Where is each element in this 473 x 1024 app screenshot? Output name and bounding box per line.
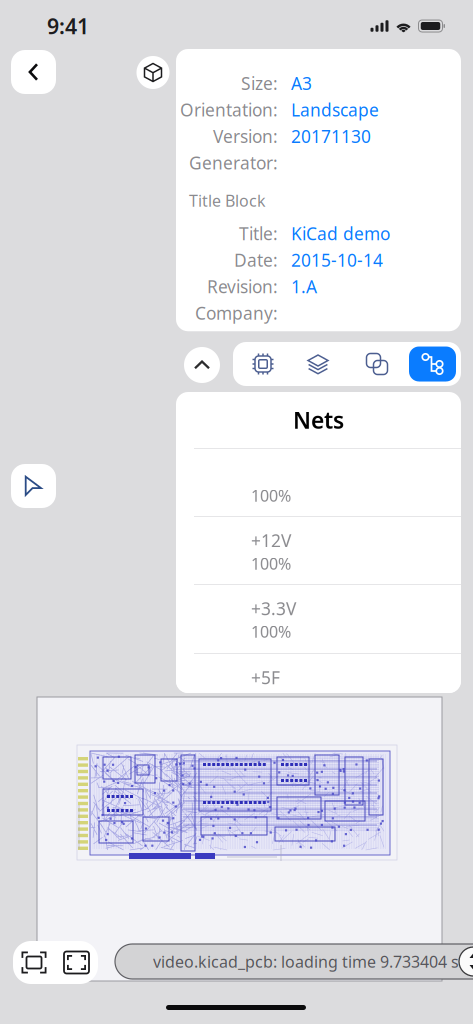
staticText: 100% — [251, 485, 291, 506]
button[interactable] — [176, 448, 461, 516]
button[interactable]: Footprints — [349, 342, 405, 386]
staticText: 100% — [251, 553, 291, 574]
staticText: Version: — [213, 125, 278, 148]
staticText: Date: — [234, 248, 278, 271]
staticText: Title: — [239, 222, 278, 245]
button[interactable]: Loading status — [115, 944, 473, 979]
button[interactable]: +12V — [176, 516, 461, 584]
button[interactable]: 3D view — [136, 56, 170, 89]
button[interactable]: Zoom to selection — [55, 941, 98, 984]
staticText: +12V — [251, 529, 291, 552]
button[interactable]: Layers — [290, 342, 346, 386]
button[interactable]: +3.3V — [176, 584, 461, 652]
staticText: Revision: — [207, 275, 278, 298]
staticText: Size: — [241, 72, 278, 95]
button[interactable]: +5F — [176, 653, 461, 693]
staticText: 20171130 — [291, 125, 371, 148]
button[interactable]: Select tool — [11, 464, 56, 508]
staticText: Orientation: — [180, 98, 278, 121]
button[interactable]: Nets — [409, 346, 456, 381]
button[interactable]: Back — [11, 50, 56, 94]
button[interactable]: Collapse panel — [184, 347, 220, 383]
staticText: Company: — [195, 301, 278, 324]
staticText: Landscape — [291, 98, 379, 121]
staticText: +3.3V — [251, 597, 296, 620]
staticText: Title Block — [189, 190, 266, 211]
staticText: 9:41 — [47, 12, 89, 40]
staticText: 100% — [251, 621, 291, 642]
button[interactable]: Components — [235, 342, 291, 386]
staticText: A3 — [291, 72, 312, 95]
staticText: 1.A — [291, 275, 317, 298]
staticText: KiCad demo — [291, 222, 390, 245]
staticText: Nets — [293, 405, 344, 435]
staticText: +5F — [251, 666, 280, 689]
staticText: 2015-10-14 — [291, 248, 383, 271]
staticText: Generator: — [189, 151, 278, 174]
button[interactable]: Fit to screen — [13, 941, 55, 984]
staticText: video.kicad_pcb: loading time 9.733404 s… — [153, 951, 473, 972]
